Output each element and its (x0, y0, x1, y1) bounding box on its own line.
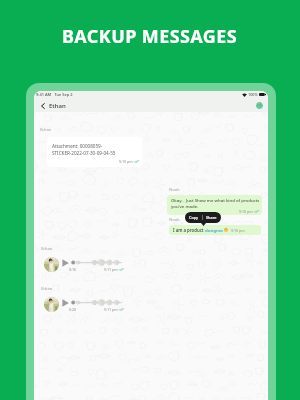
staticText: Attachment: 00008059- STICKER-2022-07-30… (52, 143, 116, 156)
staticText: Ethan (41, 246, 53, 252)
staticText: Share (206, 215, 217, 220)
staticText: Noah (169, 187, 180, 193)
button[interactable]: Profile photo (256, 102, 263, 109)
button[interactable]: Attachment: 00008059- STICKER-2022-07-30… (47, 137, 142, 167)
staticText: 0:20 (69, 307, 77, 312)
staticText: Ethan (49, 102, 66, 110)
staticText: 9:10 pm (119, 159, 133, 164)
staticText: 0:16 (69, 267, 77, 272)
staticText: Noah (169, 217, 180, 223)
staticText: BACKUP MESSAGES (62, 24, 238, 49)
staticText: Copy (189, 215, 199, 220)
staticText: 9:16 pm (231, 228, 245, 233)
button[interactable]: Back (38, 101, 47, 110)
staticText: 9:11 pm (104, 267, 118, 272)
staticText: 100% (248, 92, 258, 97)
button[interactable]: Play voice message (60, 297, 71, 308)
staticText: 9:10 pm (239, 209, 253, 214)
staticText: designer. (205, 227, 224, 233)
button[interactable]: Copy (185, 212, 202, 223)
button[interactable]: Okay.. Just Show me what kind of product… (167, 195, 262, 215)
staticText: 9:11 pm (104, 307, 118, 312)
staticText: Ethan (41, 286, 53, 292)
button[interactable]: Share (203, 212, 221, 223)
staticText: I am a product (173, 227, 205, 233)
staticText: Okay.. Just Show me what kind of product… (171, 197, 259, 210)
staticText: 9:41 AM Tue Sep 2 (36, 92, 73, 97)
staticText: Ethan (40, 127, 52, 133)
button[interactable]: I am a product (169, 225, 261, 235)
button[interactable]: Play voice message (60, 257, 71, 268)
